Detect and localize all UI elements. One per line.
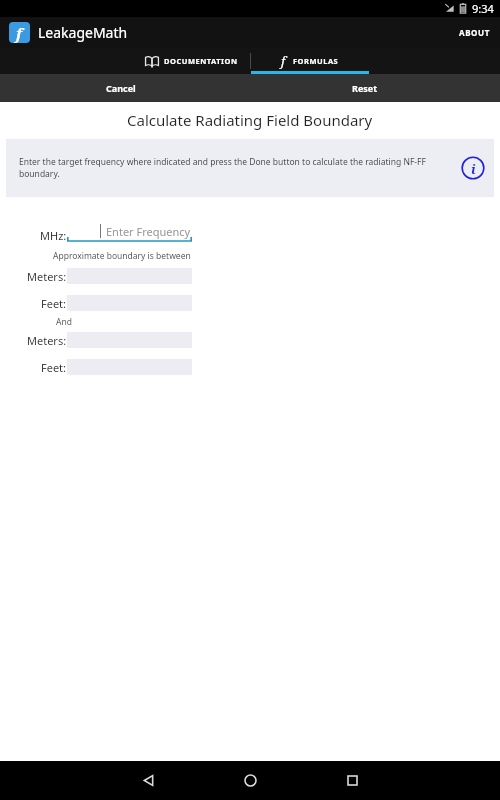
button[interactable]: Documentation (132, 48, 250, 74)
button[interactable]: Recent apps (324, 761, 380, 800)
staticText: Enter Frequency (106, 224, 191, 239)
staticText: Cancel (106, 82, 136, 94)
staticText: ABOUT (459, 27, 490, 38)
button[interactable]: f (251, 48, 369, 74)
staticText: Approximate boundary is between (53, 250, 191, 262)
button[interactable]: ABOUT (449, 21, 500, 44)
staticText: Feet: (41, 360, 67, 375)
staticText: Reset (352, 82, 378, 94)
staticText: LeakageMath (38, 23, 128, 42)
button[interactable]: Information (460, 155, 486, 181)
button[interactable]: Back (120, 761, 176, 800)
button[interactable]: Reset (342, 77, 388, 99)
staticText: Calculate Radiating Field Boundary (127, 110, 373, 130)
staticText: Meters: (27, 333, 67, 348)
button[interactable]: Cancel (96, 77, 146, 99)
staticText: i (471, 160, 476, 178)
staticText: FORMULAS (293, 56, 339, 66)
staticText: 9:34 (472, 1, 494, 16)
staticText: Feet: (41, 296, 67, 311)
staticText: And (56, 316, 72, 328)
staticText: f (16, 23, 23, 43)
staticText: Enter the target frequency where indicat… (19, 156, 444, 180)
other: Documentation (145, 56, 159, 67)
staticText: Meters: (27, 269, 67, 284)
staticText: MHz: (40, 228, 67, 243)
staticText: f (281, 52, 286, 70)
button[interactable]: Enter Frequency (67, 221, 192, 243)
button[interactable]: Home (222, 761, 278, 800)
staticText: DOCUMENTATION (164, 56, 238, 66)
